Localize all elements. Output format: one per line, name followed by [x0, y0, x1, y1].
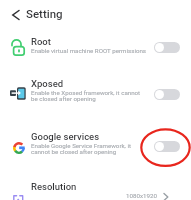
staticText: Google services	[31, 131, 100, 142]
button[interactable]: Google services	[0, 125, 191, 171]
button[interactable]	[8, 7, 26, 25]
staticText: Root	[31, 36, 51, 47]
staticText: Setting	[26, 7, 63, 20]
button[interactable]	[154, 141, 180, 152]
staticText: Xposed	[31, 78, 64, 89]
staticText: Enable virtual machine ROOT permissions	[31, 47, 147, 54]
staticText: Resolution	[31, 181, 77, 192]
button[interactable]	[154, 42, 180, 53]
button[interactable]: Root	[0, 30, 191, 66]
staticText: Enable the Xposed framework, it cannot b…	[31, 89, 141, 102]
staticText: 1080x1920	[126, 192, 157, 199]
staticText: Enable Google Service Framework, it cann…	[31, 142, 131, 155]
button[interactable]: Resolution	[0, 175, 191, 200]
button[interactable]	[154, 89, 180, 100]
button[interactable]: Xposed	[0, 72, 191, 116]
